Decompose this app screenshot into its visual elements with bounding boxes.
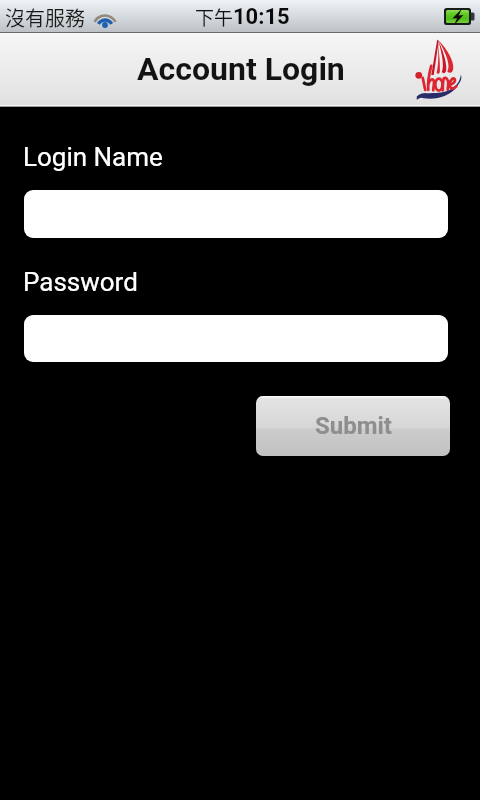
button[interactable]: ihone logo (414, 36, 464, 101)
staticText: 沒有服務 (5, 3, 85, 32)
button[interactable]: Login Name field (24, 190, 448, 238)
staticText: Password (23, 267, 138, 297)
button[interactable]: Submit (256, 396, 450, 456)
staticText: Login Name (23, 142, 163, 172)
button[interactable]: Password field (24, 315, 448, 362)
staticText: 10:15 (233, 4, 290, 30)
staticText: Account Login (137, 50, 345, 88)
staticText: 下午 (195, 3, 234, 31)
staticText: Submit (315, 412, 392, 440)
